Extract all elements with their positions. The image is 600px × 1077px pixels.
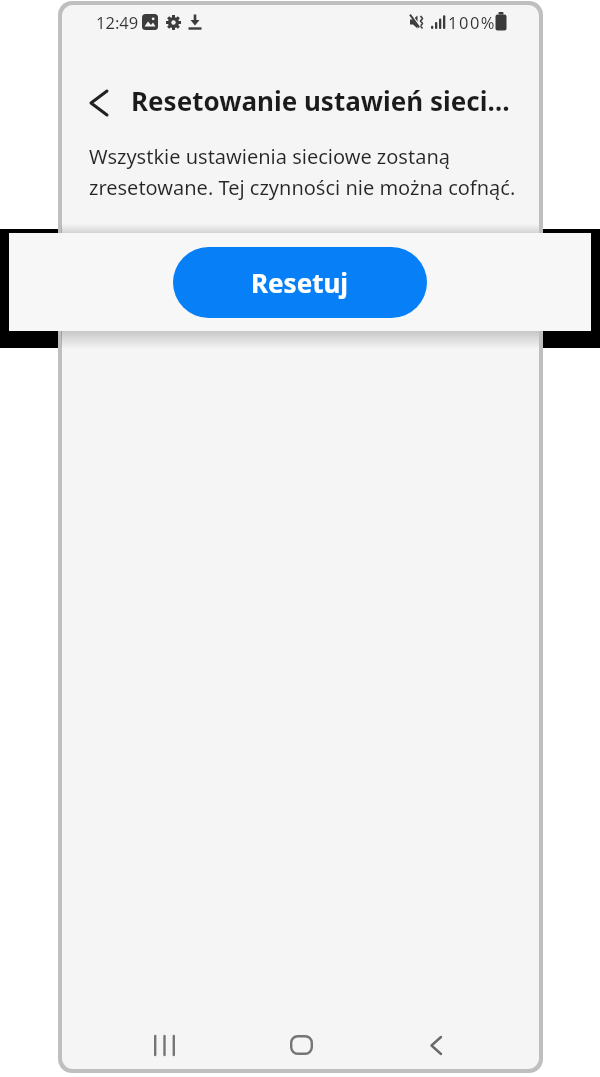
staticText: 100% [448, 11, 497, 33]
staticText: Wszystkie ustawienia sieciowe zostaną zr… [89, 143, 516, 200]
button[interactable] [416, 1026, 456, 1064]
button[interactable] [279, 1026, 323, 1064]
button[interactable] [81, 86, 115, 120]
staticText: Resetowanie ustawień sieci… [131, 83, 510, 118]
button[interactable] [142, 1026, 186, 1064]
staticText: Resetuj [251, 265, 349, 300]
staticText: 12:49 [96, 11, 139, 33]
button[interactable]: Resetuj [173, 247, 427, 318]
